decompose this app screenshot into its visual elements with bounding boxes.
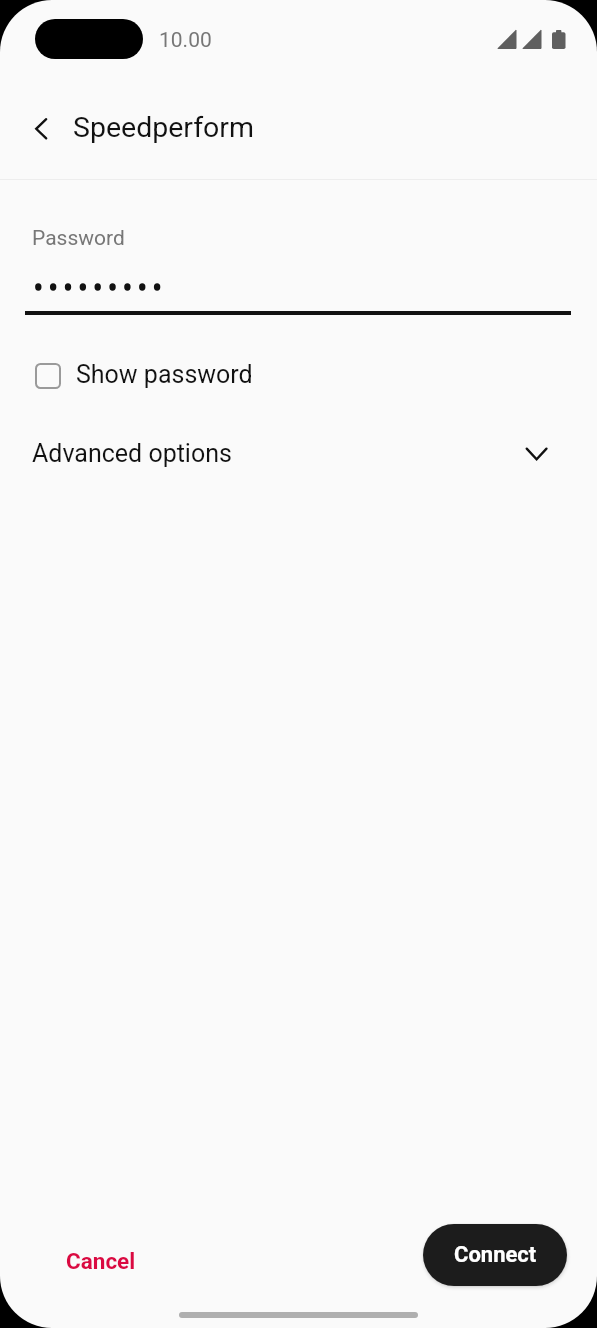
staticText: Cancel [66,1248,136,1274]
staticText: 10.00 [159,28,212,53]
staticText: Show password [76,360,253,389]
other: Expand advanced options [525,442,549,466]
button[interactable]: Back [18,105,66,153]
staticText: Password [32,226,125,251]
staticText: Connect [454,1242,537,1268]
staticText: Advanced options [32,439,232,468]
button[interactable]: Connect [423,1224,567,1286]
button[interactable]: Advanced options [0,431,597,476]
button[interactable]: Cancel [48,1238,154,1284]
staticText: Speedperform [73,111,255,144]
button[interactable]: Show password [0,357,597,394]
